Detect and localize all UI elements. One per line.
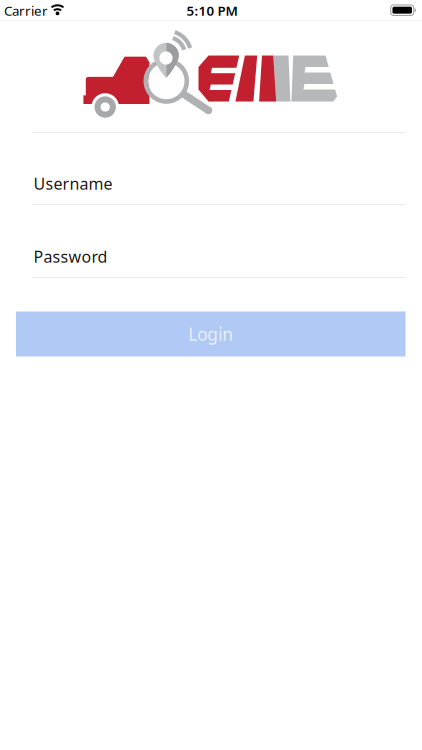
staticText: Login: [188, 322, 233, 345]
staticText: 5:10 PM: [186, 2, 237, 19]
button[interactable]: Login: [16, 311, 405, 356]
staticText: Password: [33, 246, 107, 267]
staticText: Carrier: [4, 2, 48, 19]
button[interactable]: Username: [0, 173, 422, 194]
staticText: Username: [33, 173, 112, 194]
button[interactable]: Password: [0, 246, 422, 267]
